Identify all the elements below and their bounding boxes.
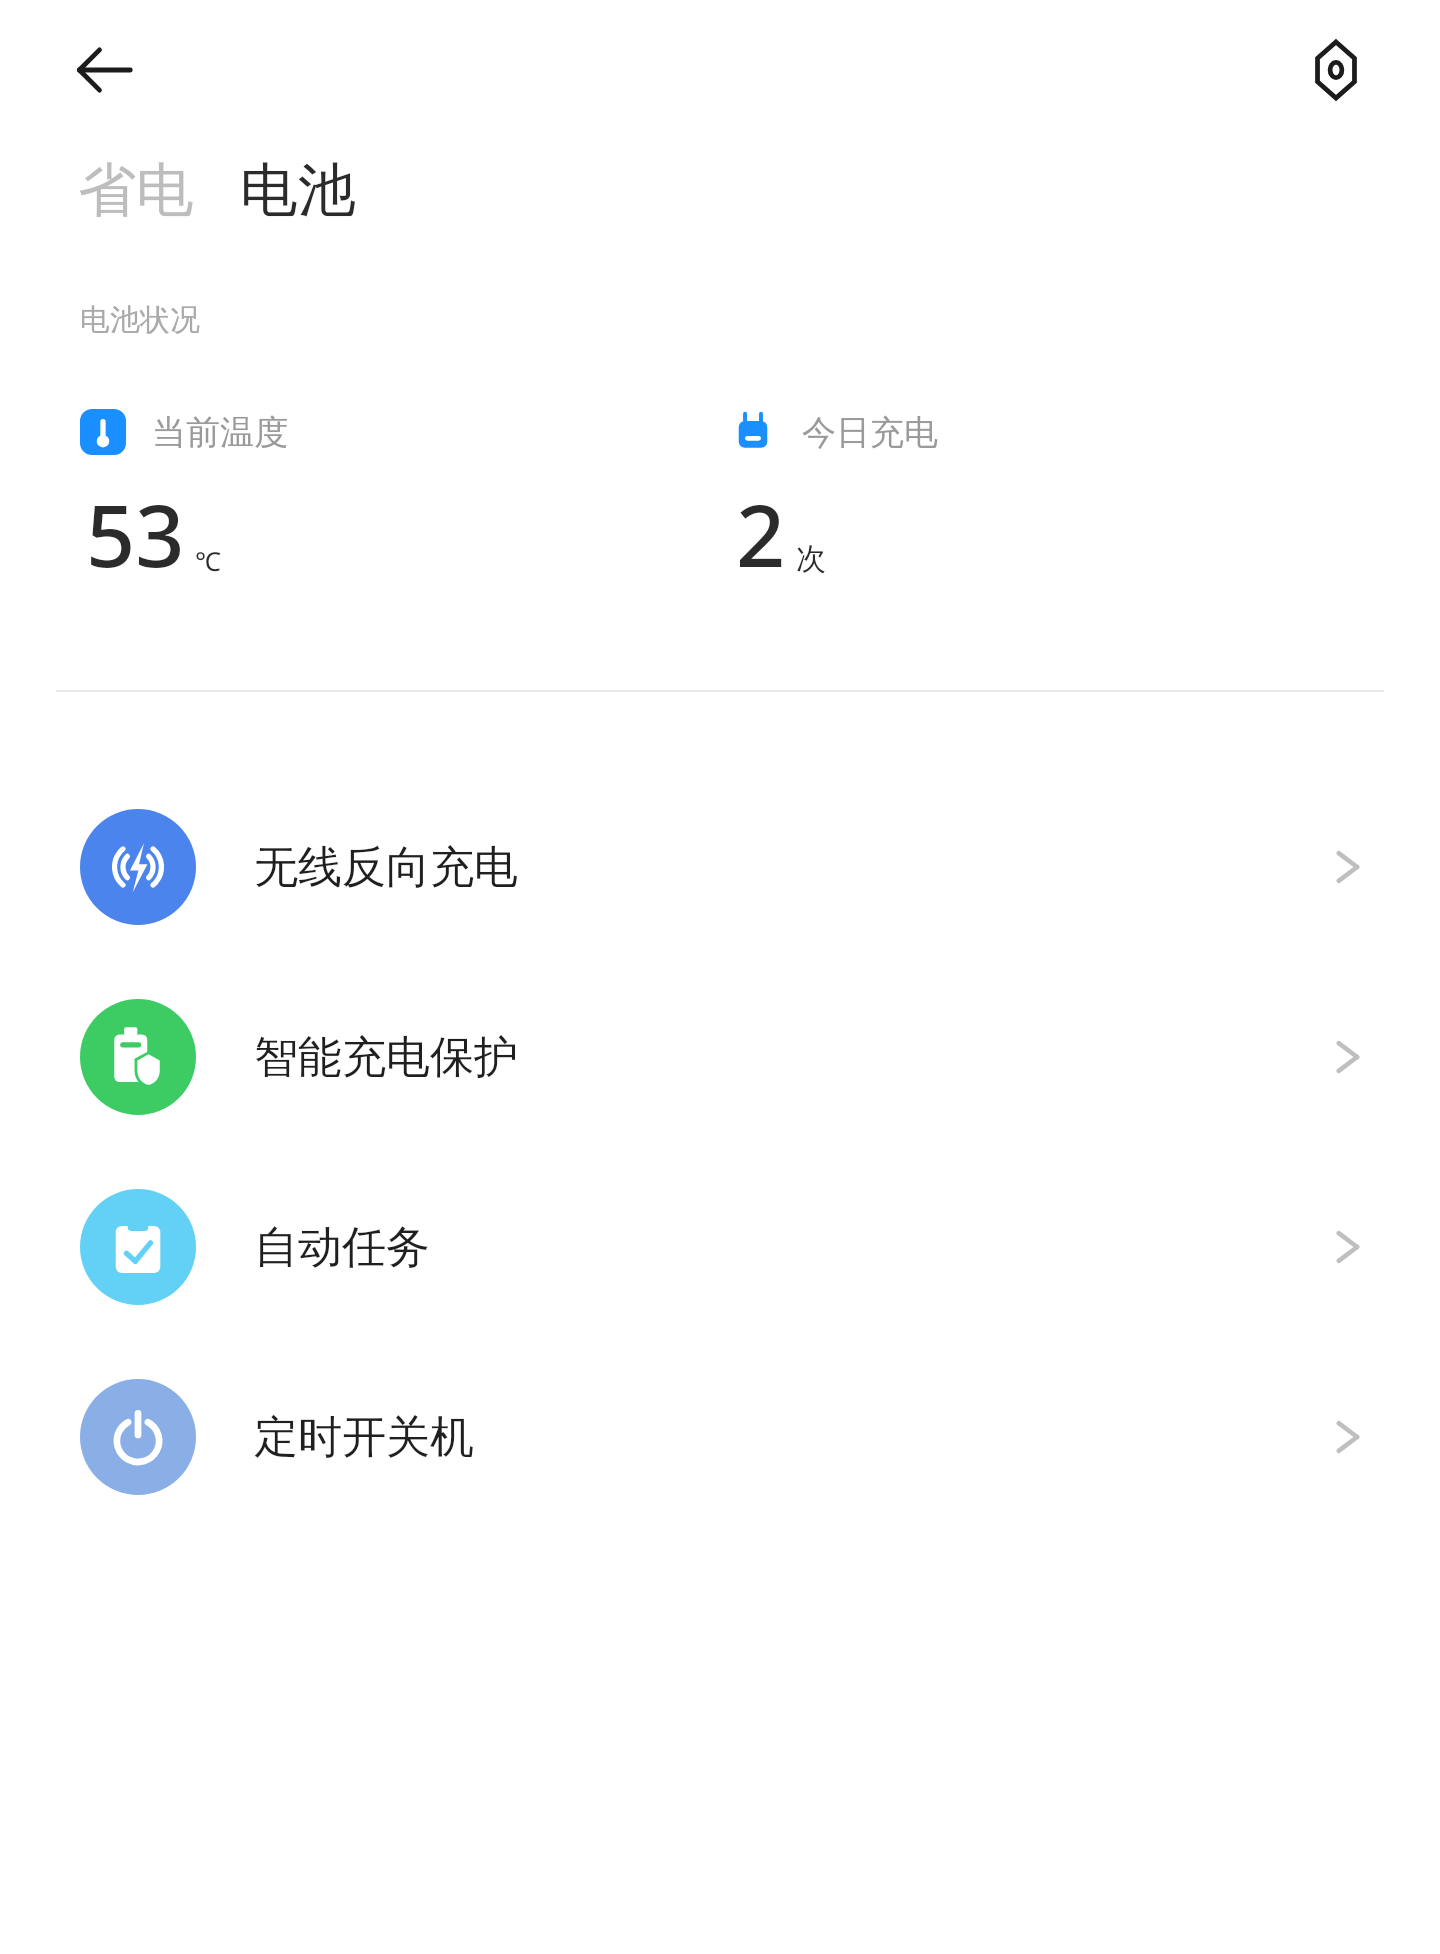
button[interactable]: 省电	[78, 154, 194, 227]
button[interactable]: 自动任务	[0, 1152, 1440, 1342]
button[interactable]: 电池	[240, 154, 356, 227]
button[interactable]: 智能充电保护	[0, 962, 1440, 1152]
staticText: 智能充电保护	[254, 1030, 1324, 1085]
button[interactable]: 无线反向充电	[0, 772, 1440, 962]
button[interactable]: Back	[62, 28, 146, 112]
staticText: 无线反向充电	[254, 840, 1324, 895]
button[interactable]: 定时开关机	[0, 1342, 1440, 1532]
staticText: 当前温度	[152, 411, 288, 454]
staticText: 今日充电	[802, 411, 938, 454]
button[interactable]: Settings	[1294, 28, 1378, 112]
staticText: 电池	[240, 154, 356, 227]
staticText: 53	[86, 475, 185, 592]
staticText: 定时开关机	[254, 1410, 1324, 1465]
staticText: 自动任务	[254, 1220, 1324, 1275]
staticText: 2	[736, 475, 786, 592]
staticText: 次	[796, 540, 826, 578]
staticText: ℃	[195, 543, 221, 578]
staticText: 电池状况	[80, 301, 200, 339]
staticText: 省电	[78, 154, 194, 227]
